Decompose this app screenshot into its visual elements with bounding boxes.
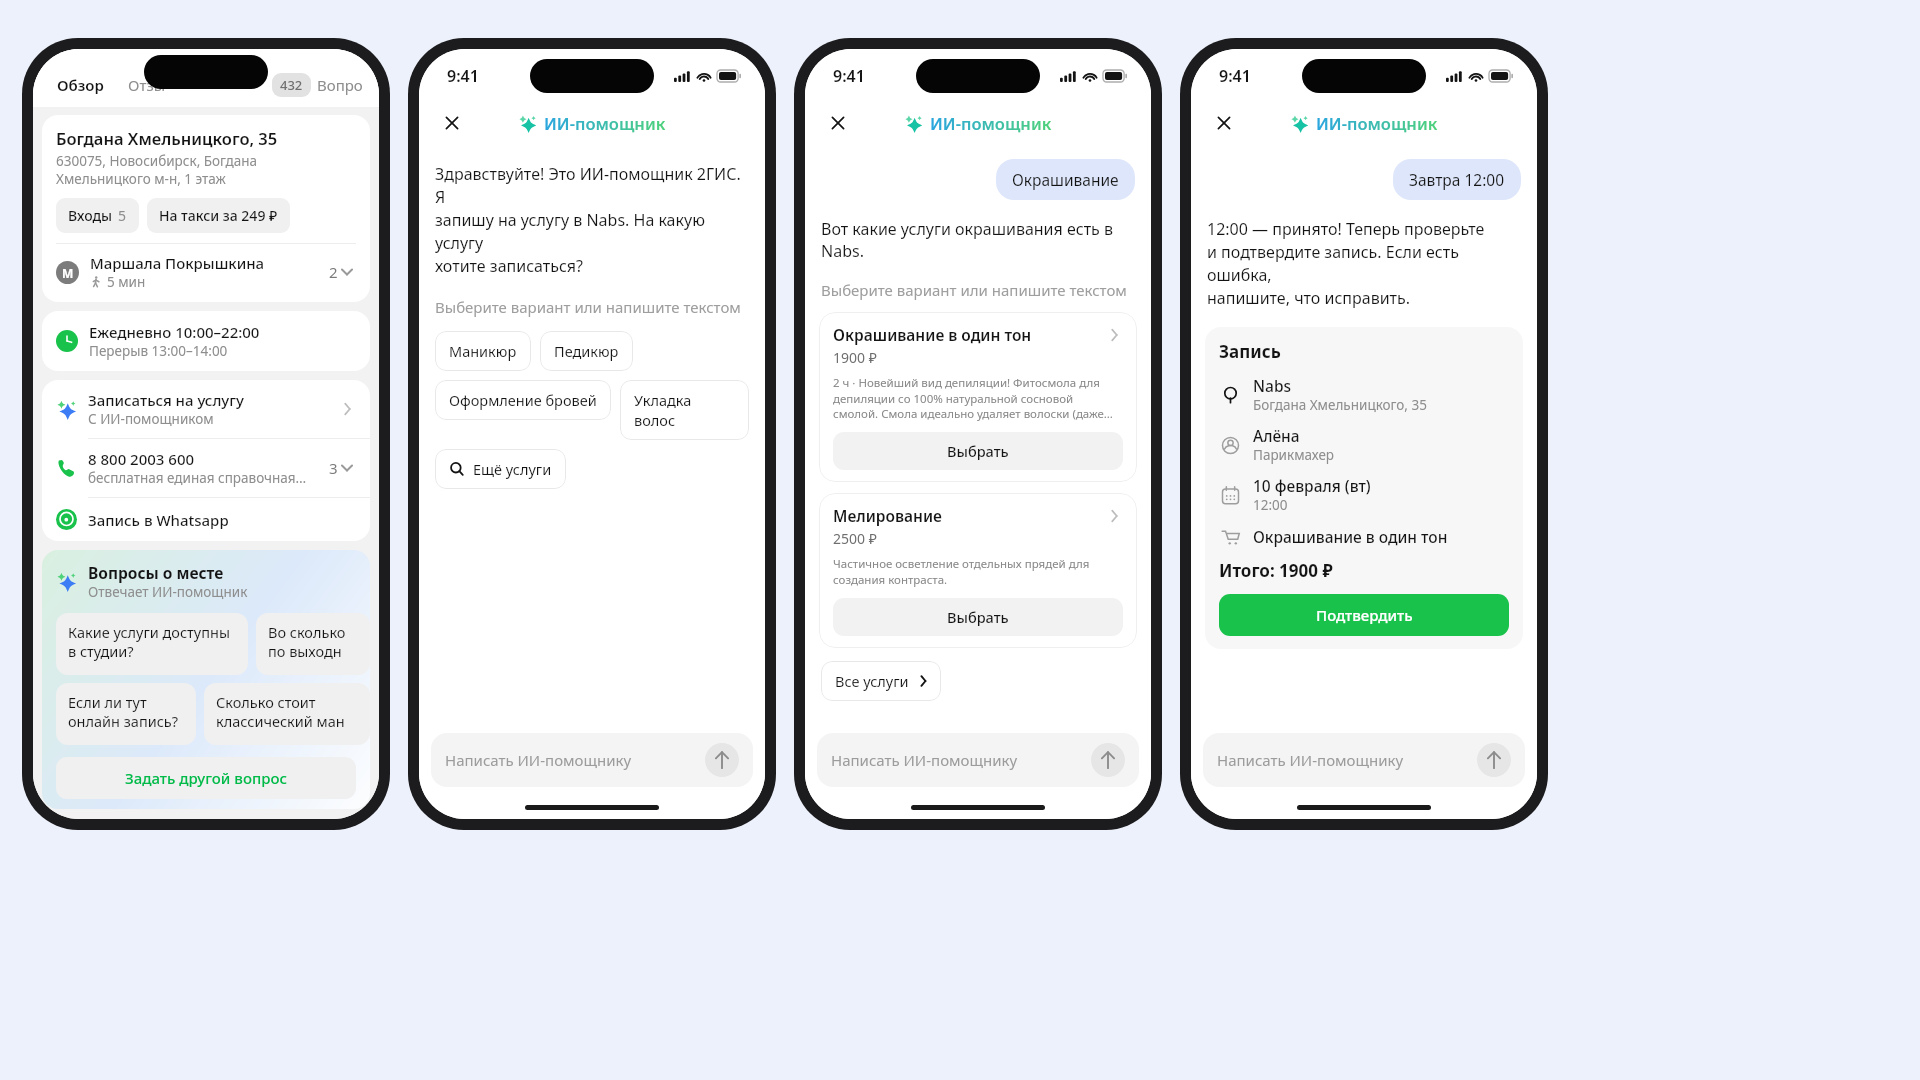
button[interactable]: Укладка волос [620,380,749,440]
button[interactable]: Закрыть [1207,106,1241,140]
staticText: 5 [118,206,127,225]
staticText: Окрашивание в один тон [1253,526,1448,547]
staticText: Богдана Хмельницкого, 35 [56,127,278,149]
staticText: Алёна [1253,425,1300,446]
staticText: Обзор [57,75,104,95]
staticText: С ИИ-помощником [88,410,214,428]
button[interactable]: 8 800 2003 600 [42,439,370,497]
staticText: 12:00 — принято! Теперь проверьте и подт… [1207,218,1521,309]
button[interactable]: Окрашивание в один тон [819,312,1137,482]
staticText: Написать ИИ-помощнику [831,750,1091,770]
staticText: Выбрать [947,607,1009,627]
button[interactable]: Задать другой вопрос [56,757,356,799]
staticText: 9:41 [833,65,865,87]
staticText: Nabs [1253,375,1292,396]
button[interactable]: Оформление бровей [435,380,611,420]
button[interactable]: Сколько стоит классический ман [204,683,370,745]
staticText: Запись [1219,340,1281,363]
staticText: Маршала Покрышкина [90,253,265,273]
button[interactable]: Ещё услуги [435,449,566,489]
button[interactable]: Входы [56,198,139,233]
button[interactable]: Во сколько по выходн [256,613,370,675]
staticText: Завтра 12:00 [1409,169,1505,190]
staticText: Записаться на услугу [88,390,244,410]
button[interactable]: Мелирование [819,493,1137,648]
staticText: 3 [329,458,338,478]
staticText: Какие услуги доступны в студии? [68,622,230,661]
staticText: Итого: 1900 ₽ [1219,559,1333,582]
staticText: Вот какие услуги окрашивания есть в Nabs… [821,218,1135,262]
staticText: 9:41 [1219,65,1251,87]
staticText: ИИ-помощник [544,112,666,134]
staticText: На такси за 249 ₽ [159,206,278,225]
staticText: Запись в Whatsapp [88,510,229,530]
staticText: 10 февраля (вт) [1253,475,1371,496]
button[interactable]: Выбрать [833,432,1123,470]
button[interactable]: M [56,244,356,300]
staticText: 630075, Новосибирск, Богдана Хмельницког… [56,152,257,188]
staticText: Написать ИИ-помощнику [1217,750,1477,770]
staticText: M [62,265,74,281]
staticText: Парикмахер [1253,446,1335,464]
staticText: Написать ИИ-помощнику [445,750,705,770]
button[interactable]: Педикюр [540,331,633,371]
staticText: Входы [68,206,113,225]
staticText: ИИ-помощник [930,112,1052,134]
staticText: Педикюр [554,341,619,361]
staticText: Подтвердить [1316,605,1413,625]
staticText: Отзы [128,75,166,95]
staticText: бесплатная единая справочная… [88,469,307,487]
button[interactable]: Запись в Whatsapp [42,498,370,541]
button[interactable]: Закрыть [821,106,855,140]
staticText: Ежедневно 10:00–22:00 [89,322,260,342]
button[interactable]: Маникюр [435,331,531,371]
button[interactable]: Написать ИИ-помощнику [431,733,753,787]
staticText: Перерыв 13:00–14:00 [89,342,228,360]
staticText: Окрашивание в один тон [833,324,1105,345]
staticText: Во сколько по выходн [268,622,346,661]
staticText: Ещё услуги [473,459,552,479]
button[interactable]: Записаться на услугу [42,380,370,438]
staticText: 432 [280,76,303,94]
button[interactable]: Если ли тут онлайн запись? [56,683,196,745]
staticText: Выберите вариант или напишите текстом [435,297,741,317]
staticText: Оформление бровей [449,390,597,410]
staticText: Отвечает ИИ-помощник [88,583,248,601]
staticText: Окрашивание [1012,169,1119,190]
staticText: Частичное осветление отдельных прядей дл… [833,556,1090,587]
staticText: Вопросы о месте [88,562,224,583]
button[interactable]: 432 [272,73,311,97]
staticText: Здравствуйте! Это ИИ-помощник 2ГИС. Я за… [435,163,749,277]
staticText: Выбрать [947,441,1009,461]
staticText: Вопро [317,75,363,95]
staticText: Богдана Хмельницкого, 35 [1253,396,1427,414]
staticText: 5 мин [107,273,146,291]
staticText: Выберите вариант или напишите текстом [821,280,1127,300]
staticText: Сколько стоит классический ман [216,692,345,731]
staticText: 2500 ₽ [833,529,877,548]
staticText: Укладка волос [634,390,735,430]
button[interactable]: Обзор [43,69,118,101]
button[interactable]: Выбрать [833,598,1123,636]
staticText: 2 ч · Новейший вид депиляции! Фитосмола … [833,375,1113,421]
staticText: 2 [329,262,338,282]
staticText: ИИ-помощник [1316,112,1438,134]
staticText: Задать другой вопрос [125,768,288,788]
button[interactable]: Какие услуги доступны в студии? [56,613,248,675]
staticText: 12:00 [1253,496,1288,514]
button[interactable]: Все услуги [821,661,941,701]
staticText: Если ли тут онлайн запись? [68,692,179,731]
staticText: Маникюр [449,341,517,361]
button[interactable]: Отзы [118,69,176,101]
button[interactable]: Написать ИИ-помощнику [817,733,1139,787]
staticText: 8 800 2003 600 [88,449,195,469]
button[interactable]: Закрыть [435,106,469,140]
button[interactable]: Подтвердить [1219,594,1509,636]
staticText: Все услуги [835,671,909,691]
button[interactable]: Написать ИИ-помощнику [1203,733,1525,787]
staticText: Мелирование [833,505,1105,526]
button[interactable]: На такси за 249 ₽ [147,198,290,233]
staticText: 1900 ₽ [833,348,877,367]
staticText: 9:41 [447,65,479,87]
